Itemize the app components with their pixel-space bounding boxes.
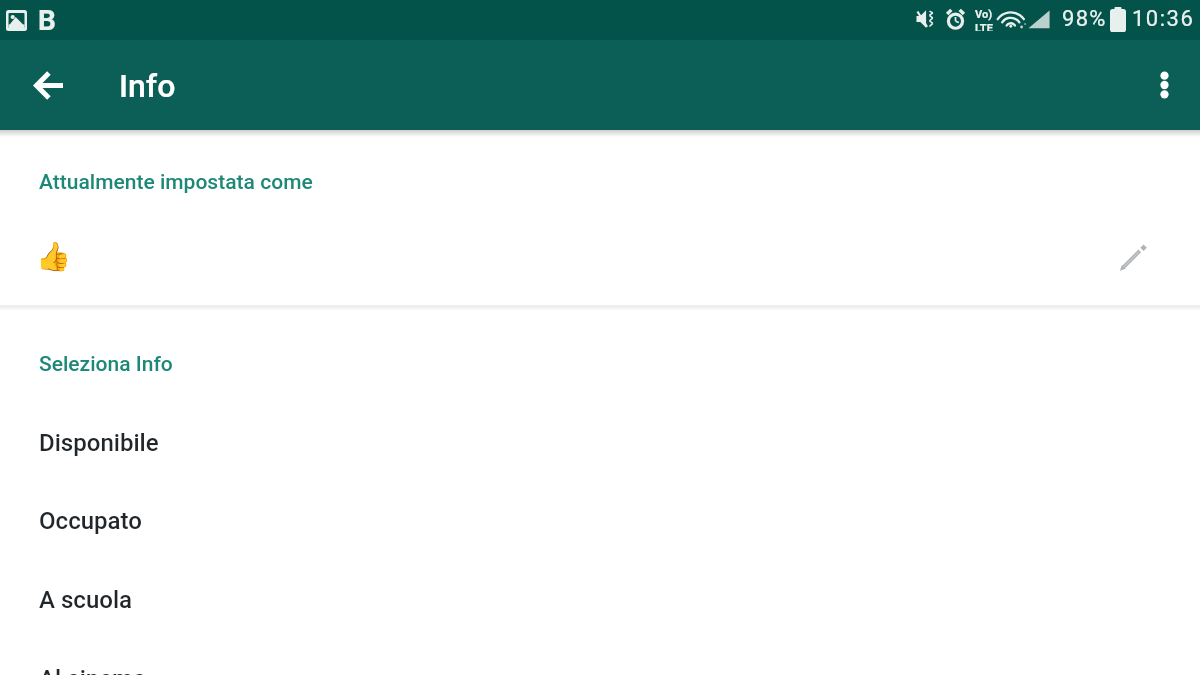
button[interactable]: Disponibile	[0, 403, 1200, 482]
staticText: 98%	[1062, 6, 1107, 32]
button[interactable]: Indietro	[22, 61, 70, 109]
staticText: Seleziona Info	[39, 352, 173, 377]
button[interactable]: A scuola	[0, 560, 1200, 639]
button[interactable]: 👍	[0, 214, 1200, 298]
button[interactable]: Al cinema	[0, 639, 1200, 675]
staticText: Occupato	[39, 507, 142, 535]
staticText: Info	[119, 67, 176, 105]
button[interactable]: Modifica	[1111, 233, 1157, 279]
button[interactable]: Altre opzioni	[1142, 63, 1186, 107]
staticText: Disponibile	[39, 429, 159, 457]
staticText: B	[38, 4, 56, 37]
staticText: Attualmente impostata come	[39, 170, 313, 195]
staticText: 👍	[36, 240, 71, 273]
staticText: 10:36	[1132, 6, 1195, 32]
staticText: A scuola	[39, 586, 133, 614]
staticText: Al cinema	[39, 665, 146, 675]
button[interactable]: Occupato	[0, 481, 1200, 560]
staticText: LTE	[975, 22, 993, 31]
staticText: Vo)	[975, 8, 993, 21]
